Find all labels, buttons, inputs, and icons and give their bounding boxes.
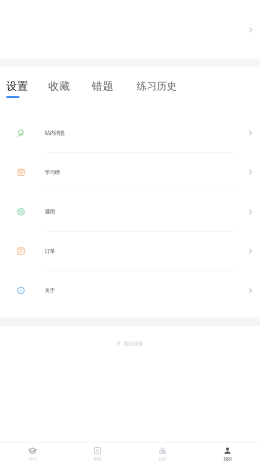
staticText: 学习榜 [45, 169, 60, 176]
button[interactable]: 学习榜 [0, 153, 260, 192]
button[interactable]: 错题 [92, 79, 114, 98]
button[interactable]: 学习 [0, 447, 65, 461]
staticText: 练习历史 [137, 80, 177, 92]
staticText: 通用 [45, 208, 55, 215]
staticText: 社区 [158, 456, 166, 461]
staticText: 题库 [93, 456, 101, 461]
button[interactable]: 题库 [65, 447, 130, 461]
button[interactable]: 练习历史 [137, 80, 177, 97]
button[interactable]: 订单 [0, 232, 260, 271]
button[interactable]: 站内消息 [0, 113, 260, 153]
staticText: 错题 [92, 79, 114, 93]
staticText: 订单 [45, 248, 55, 254]
staticText: 收藏 [48, 79, 70, 93]
button[interactable]: 通用 [0, 192, 260, 232]
staticText: 我的 [223, 456, 231, 461]
button[interactable]: 我的 [195, 447, 260, 461]
button[interactable]: Profile [249, 17, 260, 43]
staticText: 关于 [45, 287, 55, 294]
staticText: 设置 [6, 79, 28, 93]
staticText: 退出登录 [123, 340, 143, 347]
staticText: 学习 [28, 456, 36, 461]
button[interactable]: 收藏 [48, 79, 70, 98]
button[interactable]: 关于 [0, 271, 260, 310]
button[interactable]: 设置 [6, 79, 28, 98]
staticText: 站内消息 [45, 129, 65, 136]
button[interactable]: 社区 [130, 447, 195, 461]
